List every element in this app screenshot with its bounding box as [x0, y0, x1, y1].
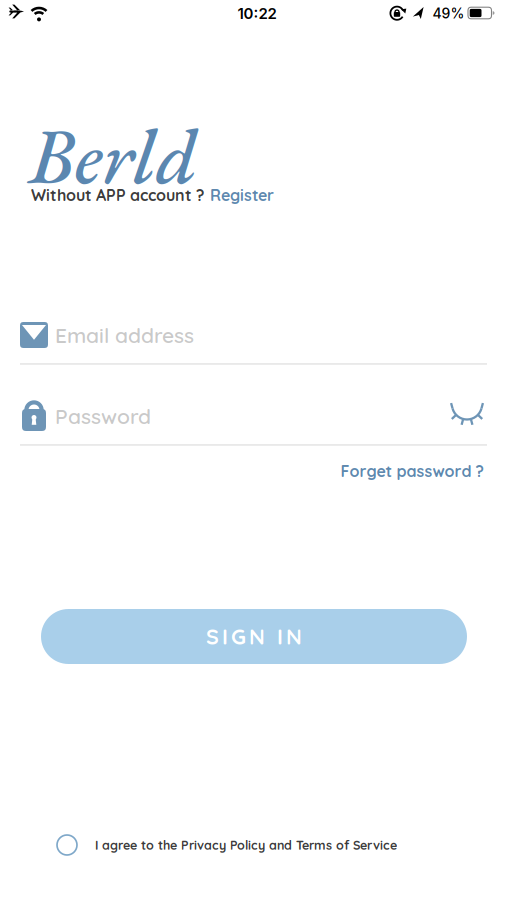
- staticText: 49%: [432, 5, 464, 22]
- button[interactable]: Password: [55, 395, 435, 437]
- button[interactable]: I agree to the Privacy Policy and Terms …: [95, 835, 495, 855]
- staticText: Berld: [29, 106, 197, 206]
- staticText: Without APP account ?: [31, 185, 204, 205]
- button[interactable]: Email address: [55, 314, 487, 356]
- staticText: 10:22: [237, 4, 276, 22]
- staticText: I agree to the Privacy Policy and Terms …: [95, 837, 397, 853]
- button[interactable]: Forget password ?: [340, 461, 483, 481]
- staticText: Forget password ?: [340, 461, 483, 481]
- button[interactable]: Agree to terms: [57, 835, 77, 855]
- button[interactable]: SIGN IN: [41, 609, 467, 664]
- staticText: Password: [55, 403, 151, 429]
- staticText: SIGN IN: [206, 623, 302, 650]
- staticText: Register: [210, 185, 274, 205]
- staticText: Email address: [55, 322, 194, 348]
- button[interactable]: Register: [210, 185, 274, 205]
- button[interactable]: Show password: [445, 403, 489, 429]
